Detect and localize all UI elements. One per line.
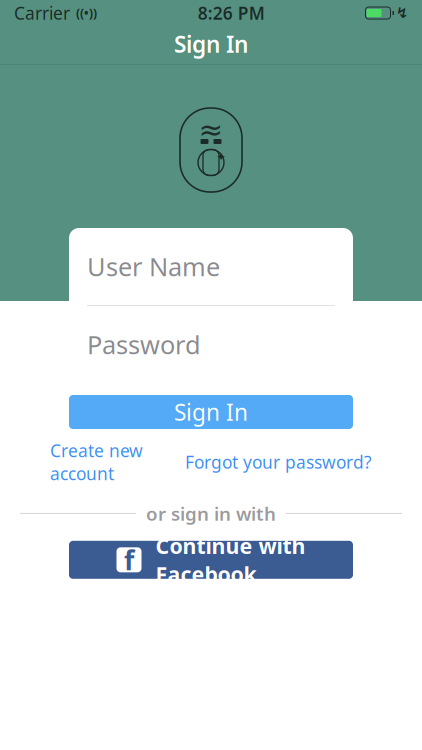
button[interactable]: Password: [69, 306, 353, 383]
staticText: 8:26 PM: [198, 1, 265, 24]
staticText: ↯: [396, 5, 408, 21]
staticText: Sign In: [174, 29, 248, 59]
button[interactable]: Create new account: [50, 439, 143, 485]
staticText: or sign in with: [146, 501, 276, 526]
button[interactable]: f: [69, 541, 353, 579]
staticText: ((•)): [70, 5, 97, 21]
button[interactable]: Sign In: [69, 395, 353, 429]
button[interactable]: User Name: [69, 228, 353, 305]
staticText: Continue with Facebook: [155, 531, 305, 588]
button[interactable]: Forgot your password?: [185, 450, 372, 473]
staticText: ✦: [216, 150, 226, 164]
staticText: Sign In: [174, 397, 248, 427]
staticText: User Name: [87, 250, 220, 283]
staticText: Password: [87, 328, 201, 361]
staticText: f: [124, 542, 134, 577]
staticText: Create new account: [50, 439, 143, 485]
staticText: Carrier: [14, 1, 70, 24]
staticText: ≈: [198, 113, 223, 146]
staticText: Forgot your password?: [185, 450, 372, 473]
